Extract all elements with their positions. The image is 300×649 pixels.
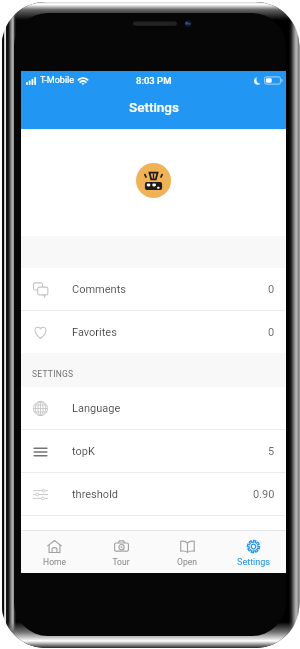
button[interactable]: Open [154, 531, 220, 573]
staticText: Settings [129, 99, 179, 115]
staticText: SETTINGS [32, 369, 74, 379]
staticText: 8:03 PM [136, 75, 172, 86]
staticText: T-Mobile [40, 75, 75, 86]
staticText: topK [72, 445, 95, 458]
button[interactable]: topK [21, 430, 286, 472]
staticText: Open [177, 557, 197, 567]
staticText: Favorites [72, 326, 117, 339]
staticText: 0 [268, 326, 275, 339]
button[interactable]: threshold [21, 473, 286, 515]
staticText: 5 [268, 445, 275, 458]
staticText: Language [72, 402, 121, 415]
button[interactable]: Comments [21, 268, 286, 310]
button[interactable]: Home [21, 531, 88, 573]
staticText: threshold [72, 488, 119, 501]
staticText: Tour [112, 557, 130, 567]
staticText: 0.90 [253, 488, 275, 501]
staticText: Comments [72, 283, 126, 296]
button[interactable]: Settings [220, 531, 286, 573]
button[interactable]: Language [21, 387, 286, 429]
button[interactable]: Tour [88, 531, 154, 573]
button[interactable]: Favorites [21, 311, 286, 353]
staticText: Home [43, 557, 66, 567]
staticText: Settings [237, 557, 270, 568]
staticText: 0 [268, 283, 275, 296]
